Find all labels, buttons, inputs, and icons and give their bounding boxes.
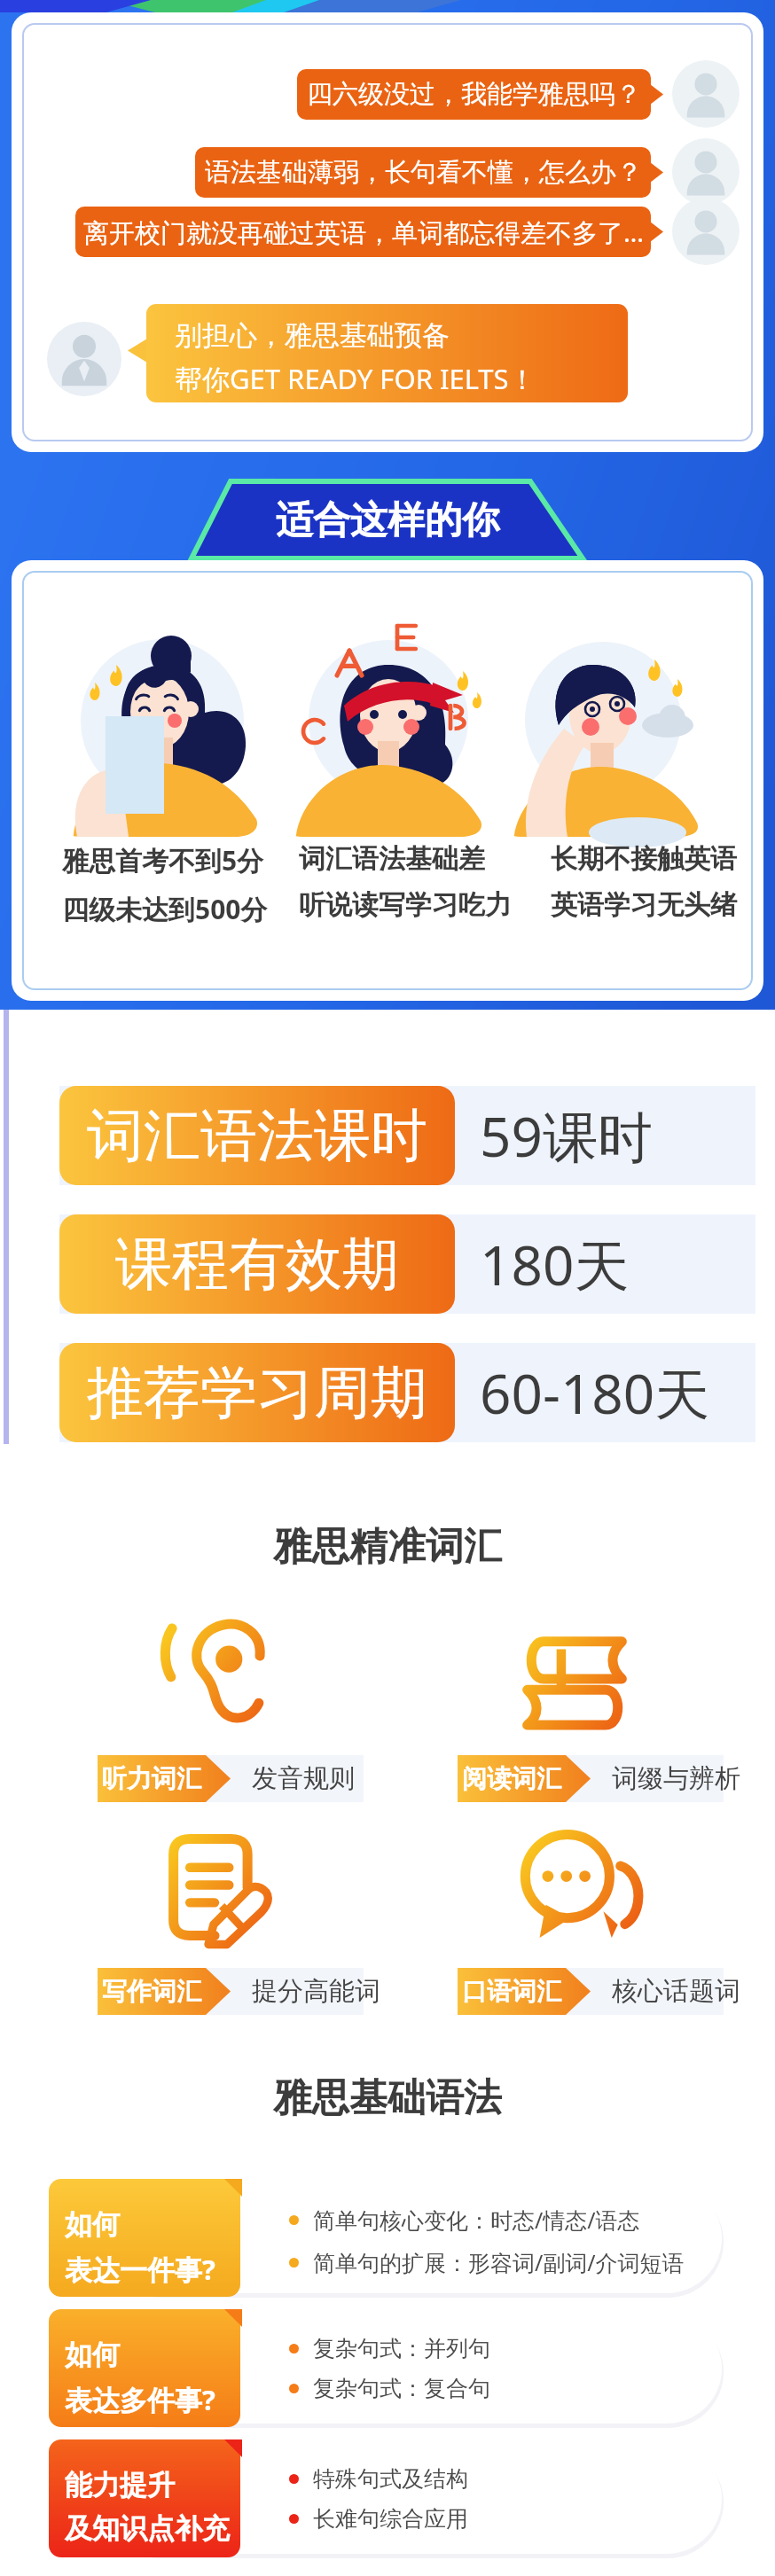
staticText: 59课时	[480, 1098, 653, 1174]
button[interactable]: 课程有效期	[59, 1214, 455, 1314]
staticText: 推荐学习周期	[87, 1357, 427, 1429]
staticText: 写作词汇	[102, 1976, 201, 2007]
staticText: 雅思首考不到5分	[62, 842, 264, 878]
staticText: 表达多件事?	[65, 2381, 215, 2418]
staticText: 雅思基础语法	[0, 2074, 775, 2122]
button[interactable]	[49, 2439, 240, 2557]
staticText: 发音规则	[252, 1762, 355, 1795]
staticText: 阅读词汇	[462, 1763, 561, 1794]
staticText: 词汇语法课时	[87, 1100, 427, 1172]
staticText: 复杂句式：复合句	[313, 2375, 490, 2402]
staticText: 英语学习无头绪	[551, 888, 737, 922]
staticText: 如何	[65, 2338, 120, 2372]
staticText: 180天	[480, 1227, 630, 1302]
button[interactable]: 离开校门就没再碰过英语，单词都忘得差不多了…	[75, 207, 651, 257]
staticText: 听力词汇	[102, 1763, 201, 1794]
staticText: 帮你GET READY FOR IELTS！	[175, 360, 536, 397]
staticText: 能力提升	[65, 2468, 175, 2502]
staticText: 语法基础薄弱，长句看不懂，怎么办？	[205, 156, 642, 189]
staticText: 四级未达到500分	[62, 891, 268, 927]
staticText: 课程有效期	[115, 1229, 399, 1300]
button[interactable]	[49, 2309, 240, 2427]
staticText: 长期不接触英语	[551, 842, 737, 876]
staticText: 适合这样的你	[276, 497, 499, 544]
button[interactable]: 语法基础薄弱，长句看不懂，怎么办？	[195, 147, 651, 198]
staticText: 复杂句式：并列句	[313, 2335, 490, 2362]
staticText: 核心话题词	[612, 1975, 740, 2008]
staticText: 四六级没过，我能学雅思吗？	[307, 78, 641, 111]
staticText: 听说读写学习吃力	[299, 888, 512, 922]
staticText: 简单句核心变化：时态/情态/语态	[313, 2205, 640, 2235]
button[interactable]: 四六级没过，我能学雅思吗？	[297, 69, 651, 120]
staticText: 口语词汇	[462, 1976, 561, 2007]
staticText: 60-180天	[480, 1355, 710, 1431]
staticText: 如何	[65, 2207, 120, 2242]
staticText: 词汇语法基础差	[299, 842, 485, 876]
staticText: 表达一件事?	[65, 2251, 215, 2288]
staticText: 及知识点补充	[65, 2511, 230, 2546]
button[interactable]: 别担心，雅思基础预备	[146, 304, 628, 402]
button[interactable]: 词汇语法课时	[59, 1086, 455, 1185]
button[interactable]	[49, 2179, 240, 2297]
staticText: 长难句综合应用	[313, 2505, 468, 2533]
staticText: 简单句的扩展：形容词/副词/介词短语	[313, 2247, 685, 2277]
staticText: 词缀与辨析	[612, 1762, 740, 1795]
staticText: 别担心，雅思基础预备	[175, 318, 450, 353]
staticText: 提分高能词	[252, 1975, 380, 2008]
button[interactable]: 推荐学习周期	[59, 1343, 455, 1442]
staticText: 雅思精准词汇	[0, 1523, 775, 1571]
staticText: 特殊句式及结构	[313, 2465, 468, 2493]
staticText: 离开校门就没再碰过英语，单词都忘得差不多了…	[83, 215, 644, 250]
